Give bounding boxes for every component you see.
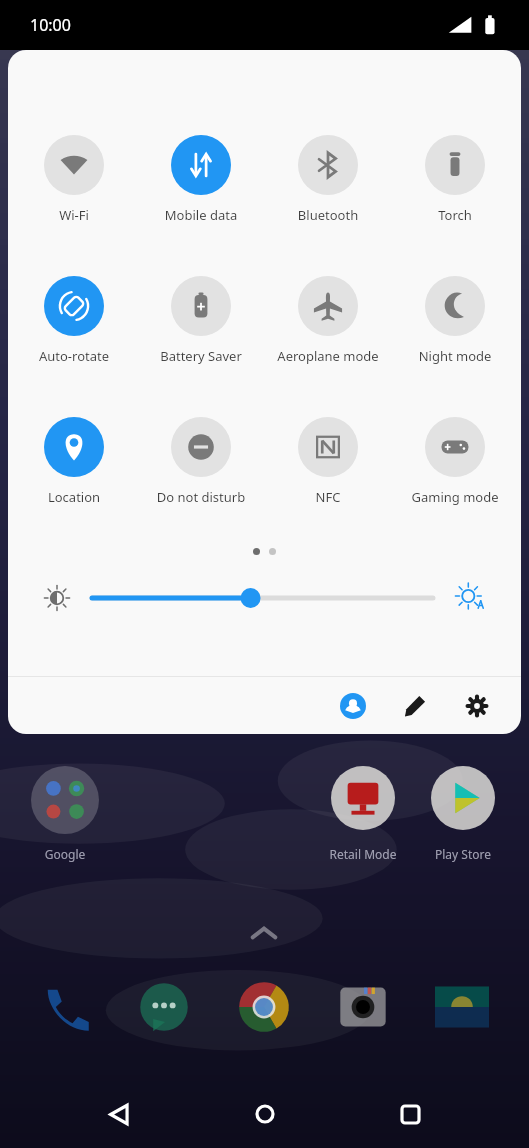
button[interactable]: Back — [92, 1087, 146, 1141]
button[interactable]: Home — [238, 1087, 292, 1141]
staticText: Mobile data — [140, 206, 262, 224]
staticText: Location — [13, 488, 135, 506]
staticText: NFC — [267, 488, 389, 506]
button[interactable] — [92, 584, 433, 612]
button[interactable]: Settings — [455, 684, 499, 728]
button[interactable]: Wi-Fi — [13, 133, 135, 226]
other: Open app drawer — [249, 923, 279, 943]
staticText: Aeroplane mode — [267, 347, 389, 365]
button[interactable]: Gaming mode — [394, 415, 516, 508]
button[interactable]: Bluetooth — [267, 133, 389, 226]
button[interactable]: Battery Saver — [140, 274, 262, 367]
staticText: 10:00 — [30, 14, 71, 36]
button[interactable] — [38, 980, 92, 1034]
button[interactable]: Recents — [383, 1087, 437, 1141]
button[interactable]: Auto brightness — [453, 581, 487, 615]
button[interactable] — [331, 766, 395, 830]
button[interactable]: Mobile data — [140, 133, 262, 226]
button[interactable] — [431, 766, 495, 830]
staticText: Google — [31, 846, 99, 862]
button[interactable] — [336, 980, 390, 1034]
staticText: Play Store — [418, 846, 508, 862]
button[interactable]: Night mode — [394, 274, 516, 367]
button[interactable]: Torch — [394, 133, 516, 226]
staticText: Night mode — [394, 347, 516, 365]
staticText: Retail Mode — [313, 846, 413, 862]
button[interactable]: Auto-rotate — [13, 274, 135, 367]
staticText: Do not disturb — [140, 488, 262, 506]
staticText: Battery Saver — [140, 347, 262, 365]
staticText: Gaming mode — [394, 488, 516, 506]
button[interactable] — [435, 980, 489, 1034]
staticText: Torch — [394, 206, 516, 224]
button[interactable] — [137, 980, 191, 1034]
button[interactable]: Aeroplane mode — [267, 274, 389, 367]
staticText: Bluetooth — [267, 206, 389, 224]
button[interactable]: NFC — [267, 415, 389, 508]
button[interactable]: Location — [13, 415, 135, 508]
staticText: Wi-Fi — [13, 206, 135, 224]
staticText: Auto-rotate — [13, 347, 135, 365]
button[interactable]: Brightness low — [42, 583, 72, 613]
button[interactable]: Do not disturb — [140, 415, 262, 508]
button[interactable] — [237, 980, 291, 1034]
button[interactable]: User — [331, 684, 375, 728]
button[interactable] — [31, 766, 99, 834]
button[interactable]: Edit — [393, 684, 437, 728]
